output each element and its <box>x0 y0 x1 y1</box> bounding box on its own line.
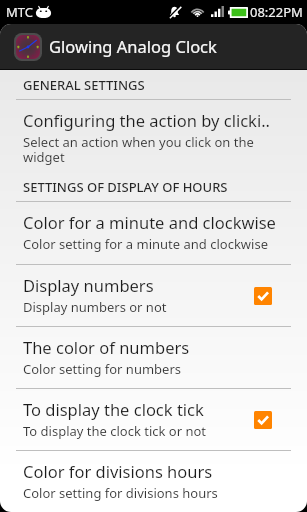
staticText: To display the clock tick <box>23 400 204 420</box>
button[interactable]: Configuring the action by clicki.. <box>0 100 307 176</box>
button[interactable]: Glowing Analog Clock icon <box>14 24 307 70</box>
staticText: Display numbers or not <box>23 300 167 315</box>
other: Glowing Analog Clock icon <box>14 33 42 61</box>
other: Wi-Fi <box>190 6 205 17</box>
button[interactable]: Display numbers <box>0 265 307 327</box>
other: Signal strength <box>211 6 224 17</box>
button[interactable]: To display the clock tick <box>0 389 307 451</box>
button[interactable]: Color for divisions hours <box>0 451 307 512</box>
other: Android <box>35 6 52 18</box>
staticText: Color setting for divisions hours <box>23 486 218 501</box>
staticText: Color setting for a minute and clockwise <box>23 237 268 252</box>
button[interactable]: Color for a minute and clockwise <box>0 202 307 265</box>
staticText: To display the clock tick or not <box>23 424 207 439</box>
staticText: Glowing Analog Clock <box>49 37 217 57</box>
button[interactable]: Checkbox <box>254 287 272 305</box>
staticText: Color for divisions hours <box>23 462 213 482</box>
staticText: Select an action when you click on the w… <box>23 135 290 165</box>
staticText: Color setting for numbers <box>23 362 181 377</box>
staticText: SETTINGS OF DISPLAY OF HOURS <box>23 180 228 195</box>
staticText: Configuring the action by clicki.. <box>23 111 270 131</box>
staticText: Color for a minute and clockwise <box>23 213 276 233</box>
staticText: MTC <box>6 5 33 20</box>
button[interactable]: Checkbox <box>254 411 272 429</box>
staticText: GENERAL SETTINGS <box>23 78 145 93</box>
staticText: 08:22PM <box>250 5 303 20</box>
staticText: The color of numbers <box>23 338 190 358</box>
staticText: Display numbers <box>23 276 154 296</box>
other: Silent mode <box>169 6 180 17</box>
other: Battery <box>228 7 248 18</box>
button[interactable]: The color of numbers <box>0 327 307 389</box>
